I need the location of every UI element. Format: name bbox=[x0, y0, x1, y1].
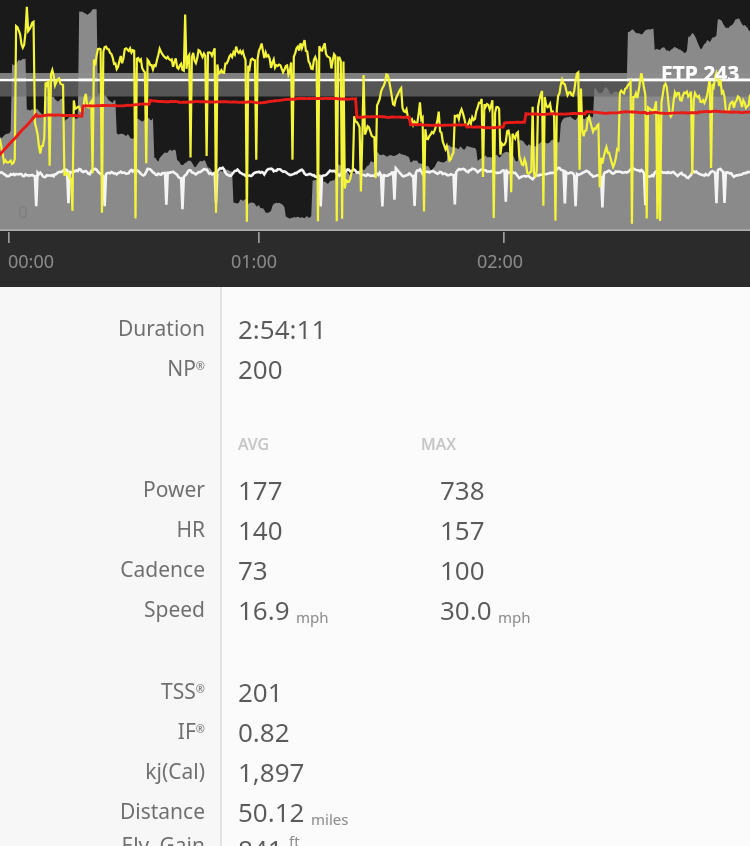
staticText: Cadence bbox=[120, 555, 205, 584]
staticText: 201 bbox=[238, 674, 283, 709]
staticText: AVG bbox=[238, 433, 270, 455]
button[interactable]: HR bbox=[0, 509, 750, 549]
staticText: FTP 243 bbox=[661, 59, 740, 88]
staticText: 100 bbox=[440, 552, 485, 587]
staticText: HR bbox=[176, 515, 205, 544]
button[interactable]: Power bbox=[0, 469, 750, 509]
staticText: Distance bbox=[119, 797, 205, 826]
button[interactable]: kj(Cal) bbox=[0, 751, 750, 791]
staticText: 02:00 bbox=[477, 249, 524, 274]
staticText: 177 bbox=[238, 472, 283, 507]
staticText: TSS® bbox=[161, 677, 205, 706]
staticText: Power bbox=[142, 475, 205, 504]
staticText: 30.0 bbox=[440, 592, 492, 627]
button[interactable]: Duration bbox=[0, 308, 750, 348]
staticText: 140 bbox=[238, 512, 283, 547]
staticText: Speed bbox=[143, 595, 205, 624]
staticText: NP® bbox=[167, 354, 205, 383]
staticText: 738 bbox=[440, 472, 485, 507]
staticText: IF® bbox=[177, 717, 205, 746]
button[interactable]: Cadence bbox=[0, 549, 750, 589]
staticText: 73 bbox=[238, 552, 268, 587]
staticText: ft bbox=[289, 831, 300, 846]
staticText: mph bbox=[296, 607, 329, 627]
button[interactable]: Workout power, heart rate and speed char… bbox=[0, 0, 750, 287]
staticText: kj(Cal) bbox=[145, 757, 205, 786]
staticText: Duration bbox=[117, 314, 205, 343]
button[interactable]: NP® bbox=[0, 348, 750, 388]
staticText: 01:00 bbox=[231, 249, 278, 274]
staticText: 1,897 bbox=[238, 754, 305, 789]
button[interactable]: Elv. Gain bbox=[0, 831, 750, 846]
staticText: 2:54:11 bbox=[238, 311, 327, 346]
staticText: MAX bbox=[421, 433, 456, 455]
staticText: 0 bbox=[18, 200, 28, 223]
staticText: 200 bbox=[238, 351, 283, 386]
button[interactable]: TSS® bbox=[0, 671, 750, 711]
staticText: miles bbox=[311, 809, 349, 829]
staticText: 157 bbox=[440, 512, 485, 547]
button[interactable]: IF® bbox=[0, 711, 750, 751]
button[interactable]: Distance bbox=[0, 791, 750, 831]
staticText: 841 bbox=[238, 831, 283, 846]
staticText: 00:00 bbox=[8, 249, 55, 274]
staticText: mph bbox=[498, 607, 531, 627]
button[interactable]: Speed bbox=[0, 589, 750, 629]
staticText: Elv. Gain bbox=[121, 831, 205, 846]
staticText: 50.12 bbox=[238, 794, 305, 829]
staticText: 0.82 bbox=[238, 714, 290, 749]
staticText: 16.9 bbox=[238, 592, 290, 627]
